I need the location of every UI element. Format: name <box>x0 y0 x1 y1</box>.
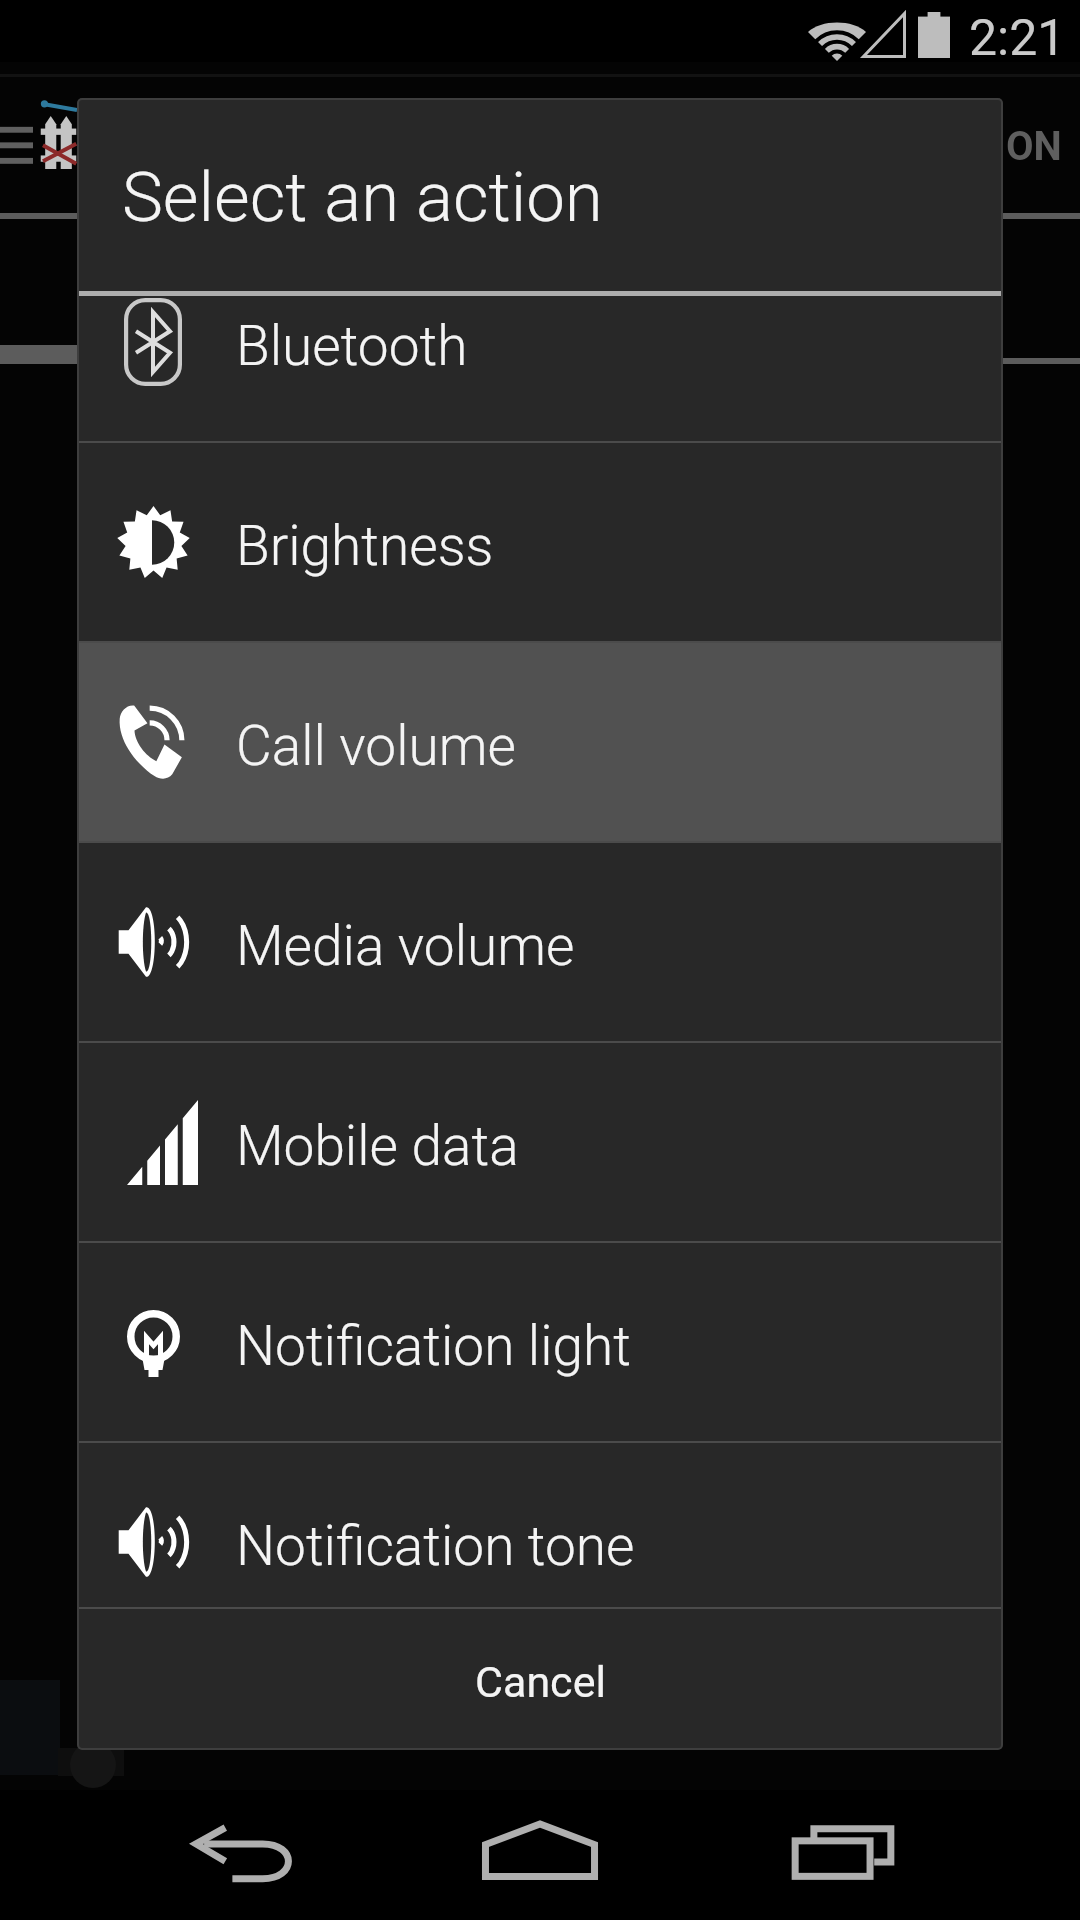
staticText: Bluetooth <box>236 314 468 378</box>
staticText: ON <box>1006 123 1062 170</box>
staticText: Media volume <box>236 914 575 978</box>
button[interactable]: Cancel <box>77 1609 1003 1750</box>
button[interactable]: Call volume <box>77 643 1003 841</box>
button[interactable]: Back <box>134 1790 354 1920</box>
button[interactable]: Home <box>430 1790 650 1920</box>
staticText: Call volume <box>236 714 516 778</box>
staticText: Notification light <box>236 1314 631 1378</box>
button[interactable]: Notification tone <box>77 1443 1003 1607</box>
staticText: Brightness <box>236 514 494 578</box>
button[interactable]: Bluetooth <box>77 296 1003 441</box>
staticText: Cancel <box>475 1657 606 1707</box>
button[interactable]: Media volume <box>77 843 1003 1041</box>
staticText: 2:21 <box>969 9 1066 68</box>
button[interactable]: Recent apps <box>733 1790 953 1920</box>
staticText: Mobile data <box>236 1114 519 1178</box>
staticText: Notification tone <box>236 1514 635 1578</box>
button[interactable]: Notification light <box>77 1243 1003 1441</box>
staticText: Select an action <box>122 157 603 238</box>
button[interactable]: Brightness <box>77 443 1003 641</box>
button[interactable]: Mobile data <box>77 1043 1003 1241</box>
